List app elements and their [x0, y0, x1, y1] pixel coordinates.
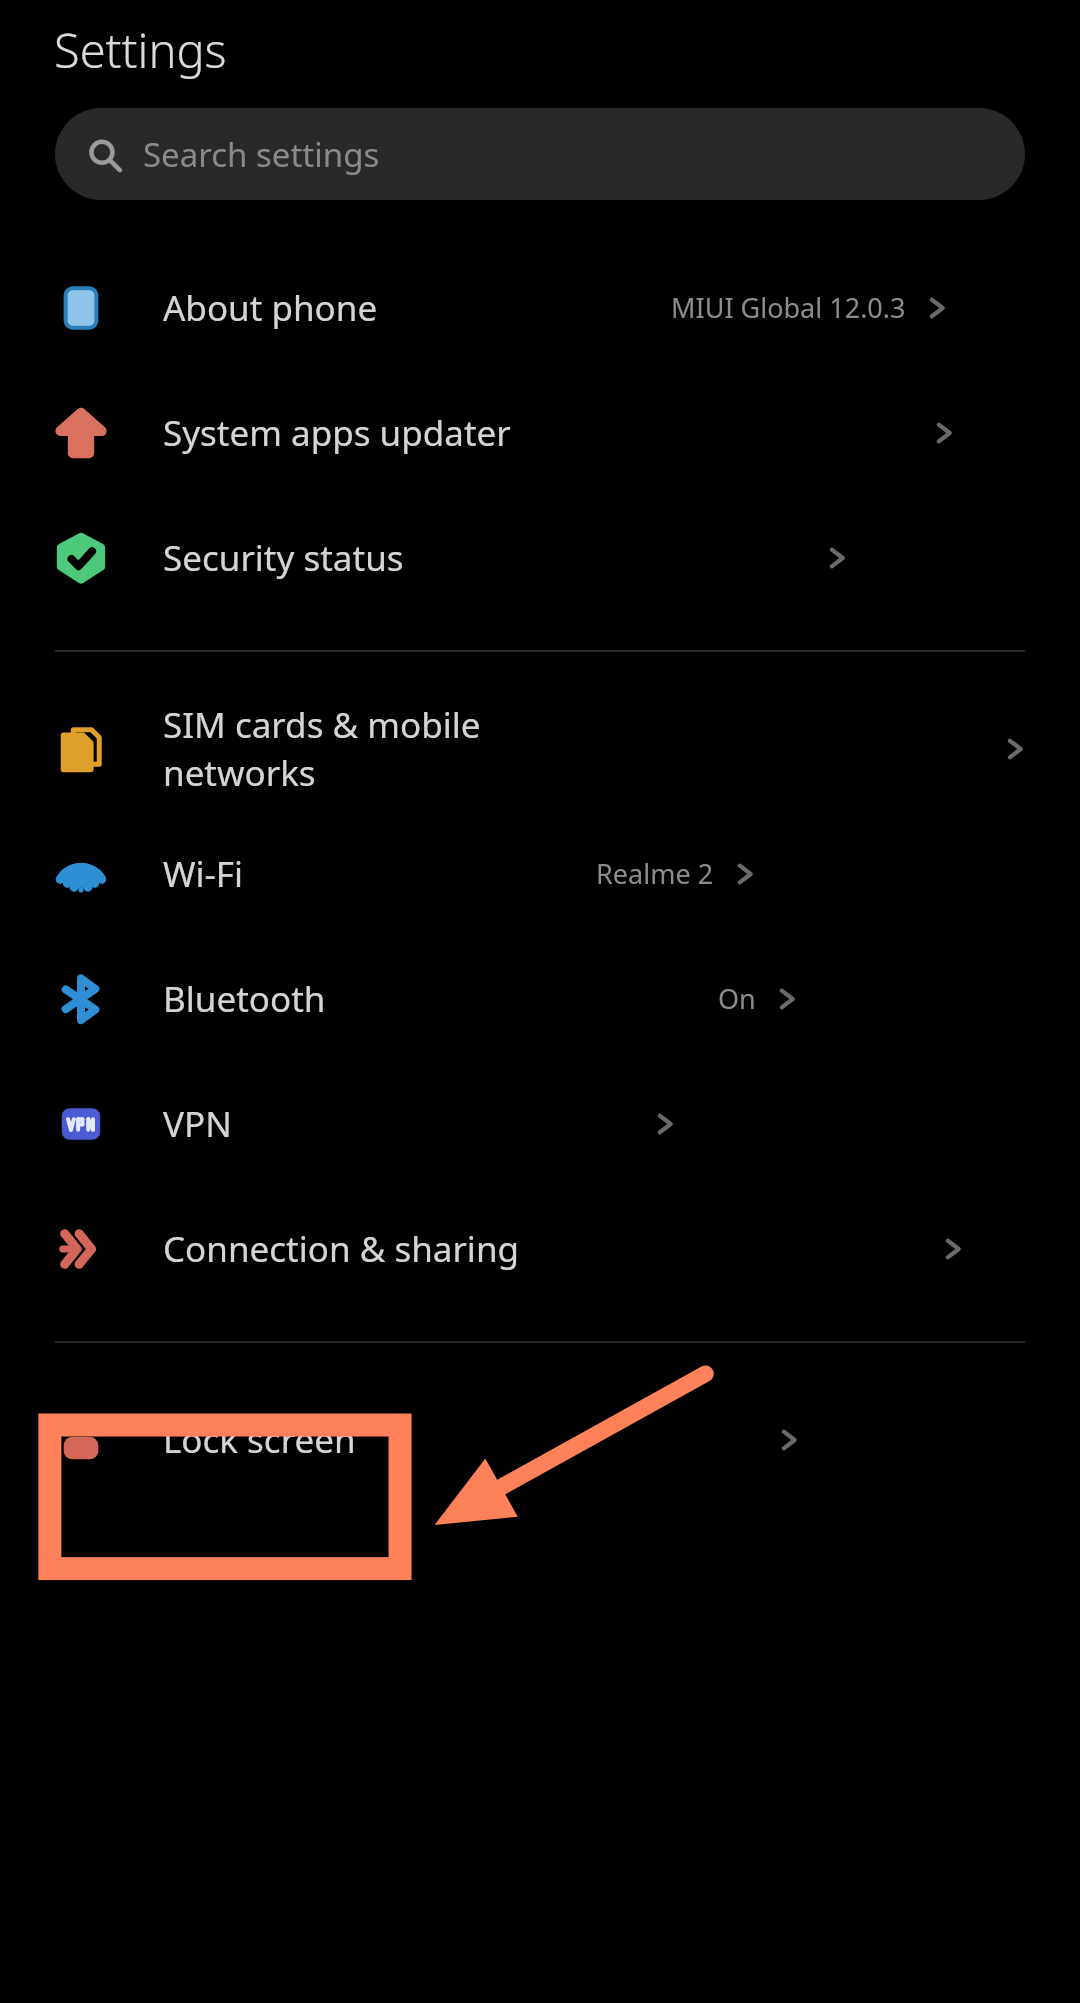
staticText: On	[718, 980, 756, 1017]
staticText: Bluetooth	[163, 975, 326, 1023]
staticText: Realme 2	[596, 855, 714, 892]
button[interactable]: About phone	[0, 245, 1080, 370]
staticText: Search settings	[143, 132, 380, 177]
staticText: Wi-Fi	[163, 850, 244, 898]
staticText: About phone	[163, 284, 378, 332]
button[interactable]: Connection & sharing	[0, 1186, 1080, 1311]
button[interactable]: Wi-Fi	[0, 811, 1080, 936]
staticText: VPN	[163, 1100, 232, 1148]
staticText: Connection & sharing	[163, 1225, 520, 1273]
button[interactable]: Lock screen	[0, 1377, 1080, 1502]
button[interactable]: Security status	[0, 495, 1080, 620]
button[interactable]: VPN	[0, 1061, 1080, 1186]
button[interactable]: SIM cards & mobile networks	[0, 686, 1080, 811]
staticText: MIUI Global 12.0.3	[671, 289, 906, 326]
staticText: Lock screen	[163, 1416, 356, 1464]
staticText: Settings	[54, 18, 227, 82]
staticText: SIM cards & mobile networks	[163, 701, 582, 797]
button[interactable]: Bluetooth	[0, 936, 1080, 1061]
button[interactable]: System apps updater	[0, 370, 1080, 495]
staticText: System apps updater	[163, 409, 511, 457]
button[interactable]: Search settings	[55, 108, 1025, 200]
staticText: Security status	[163, 534, 404, 582]
